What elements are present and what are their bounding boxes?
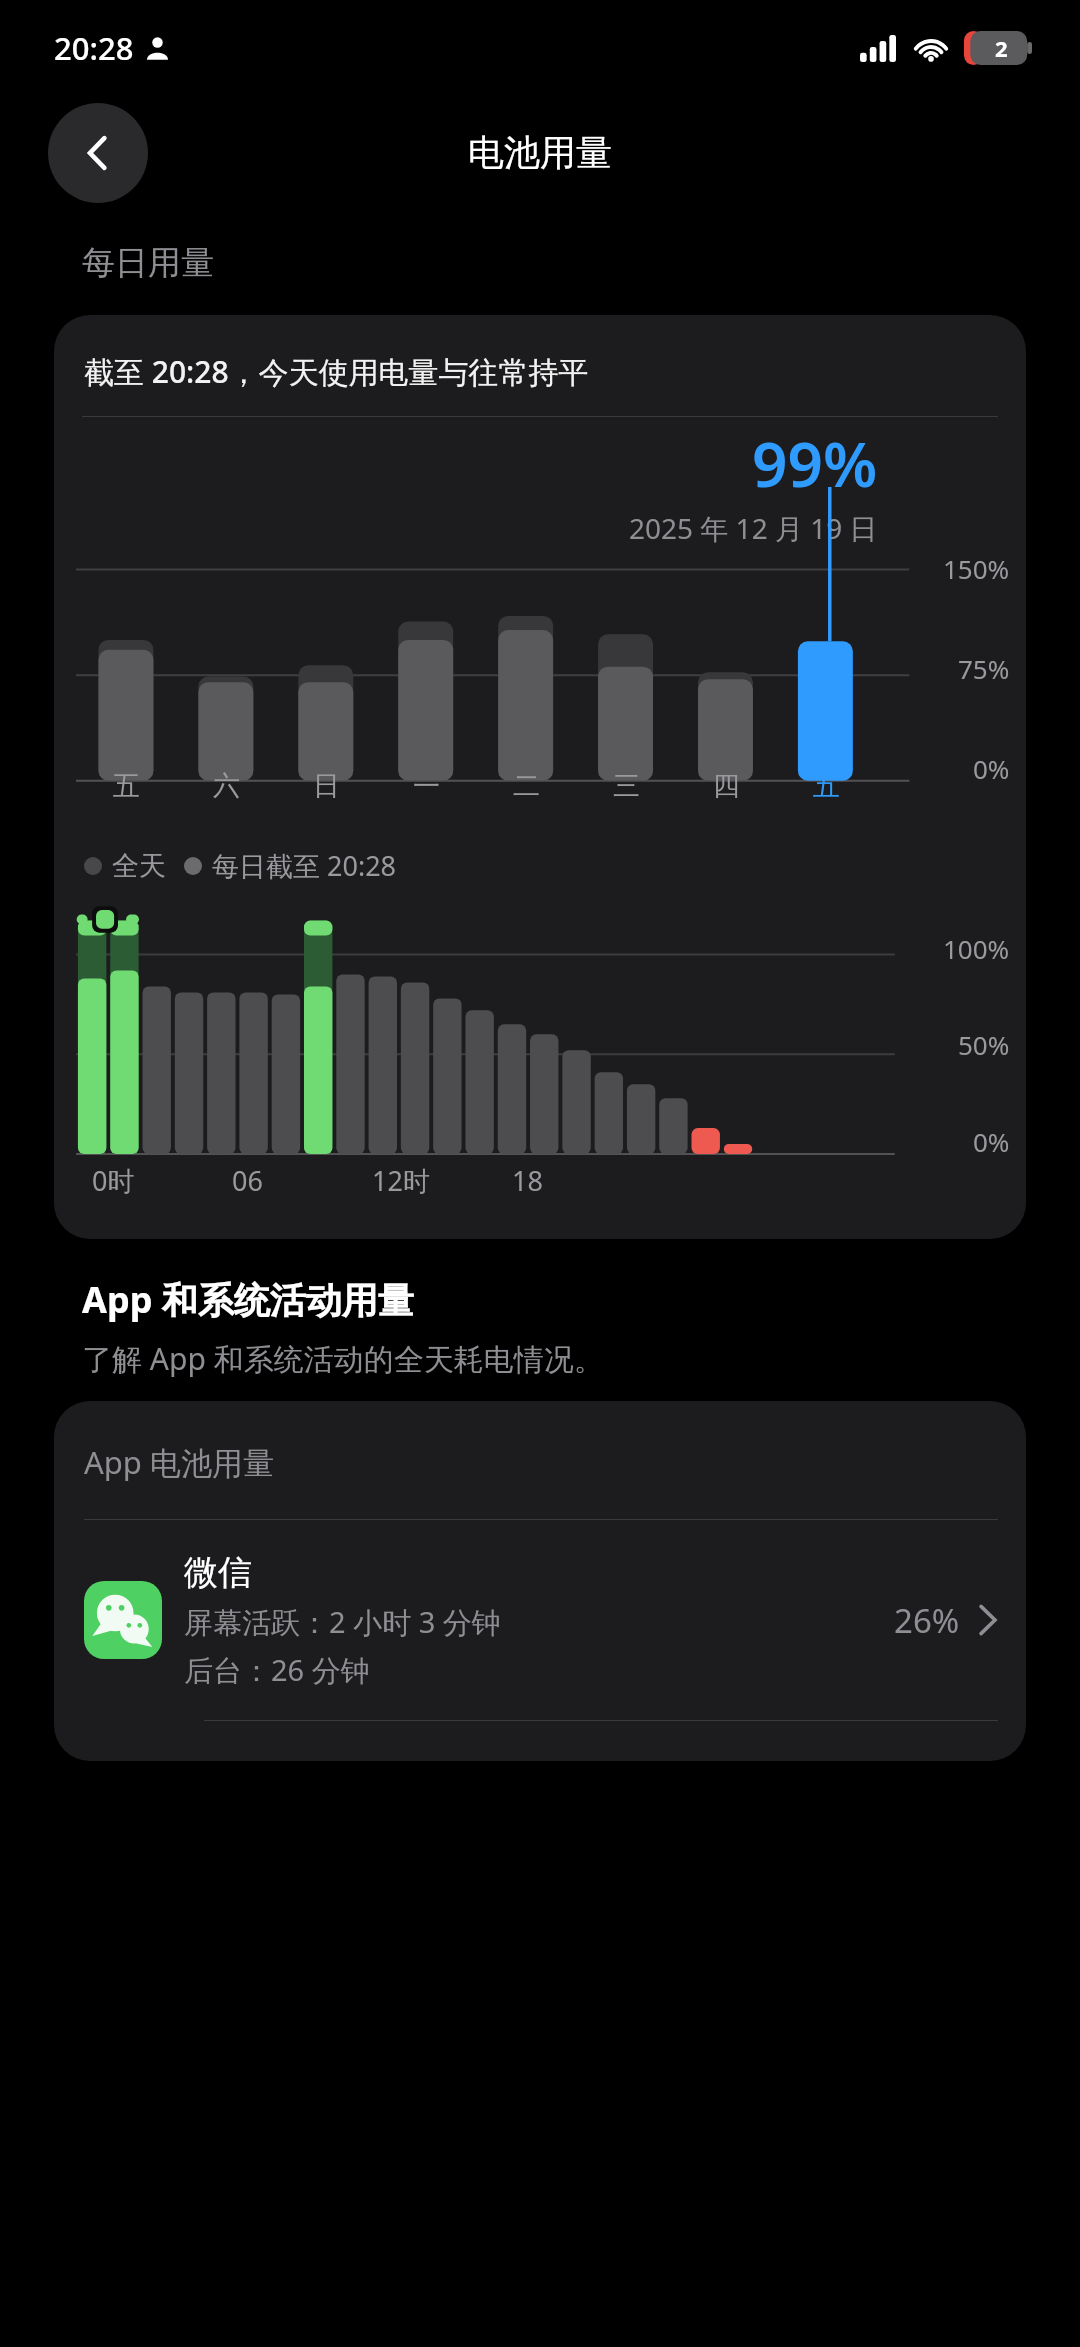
staticText: 0% xyxy=(973,751,1010,786)
staticText: 100% xyxy=(943,931,1010,966)
staticText: 06 xyxy=(232,1162,263,1199)
staticText: 75% xyxy=(958,651,1010,686)
staticText: 0% xyxy=(973,1124,1010,1159)
staticText: 99% xyxy=(752,421,878,505)
staticText: 三 xyxy=(613,769,640,803)
staticText: 屏幕活跃：2 小时 3 分钟 xyxy=(184,1602,501,1642)
staticText: 后台：26 分钟 xyxy=(184,1650,370,1690)
staticText: 12时 xyxy=(372,1162,430,1199)
staticText: 电池用量 xyxy=(468,130,612,175)
staticText: 日 xyxy=(313,769,340,803)
staticText: 20:28 xyxy=(54,27,134,69)
staticText: 五 xyxy=(113,769,140,803)
staticText: 四 xyxy=(713,769,740,803)
staticText: App 电池用量 xyxy=(84,1441,274,1483)
staticText: 截至 20:28，今天使用电量与往常持平 xyxy=(84,351,589,392)
staticText: 微信 xyxy=(184,1551,252,1594)
staticText: 每日截至 20:28 xyxy=(212,847,397,884)
staticText: 一 xyxy=(413,769,440,803)
staticText: 每日用量 xyxy=(82,242,214,284)
button[interactable]: 微信 xyxy=(54,1520,1026,1720)
staticText: 0时 xyxy=(92,1162,135,1199)
staticText: 了解 App 和系统活动的全天耗电情况。 xyxy=(82,1338,604,1379)
staticText: 二 xyxy=(513,769,540,803)
staticText: 150% xyxy=(943,551,1010,586)
staticText: 26% xyxy=(894,1598,960,1643)
staticText: App 和系统活动用量 xyxy=(82,1275,414,1324)
staticText: 六 xyxy=(213,769,240,803)
staticText: 2025 年 12 月 19 日 xyxy=(629,509,878,547)
button[interactable]: 返回 xyxy=(48,103,148,203)
staticText: 50% xyxy=(958,1027,1010,1062)
staticText: 2 xyxy=(995,33,1008,63)
staticText: 18 xyxy=(512,1162,543,1199)
staticText: 五 xyxy=(813,769,840,803)
staticText: 全天 xyxy=(112,849,166,883)
